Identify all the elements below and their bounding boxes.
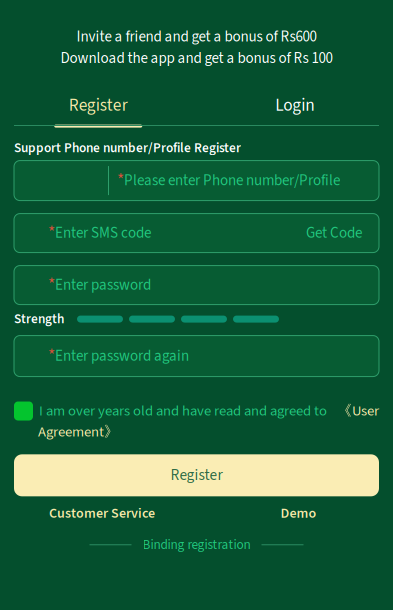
staticText: Please enter Phone number/Profile: [124, 170, 340, 191]
staticText: Customer Service: [49, 503, 155, 523]
staticText: I am over years old and have read and ag…: [39, 401, 327, 421]
button[interactable]: Demo: [204, 503, 393, 523]
staticText: *: [48, 344, 55, 368]
staticText: *: [117, 168, 124, 193]
button[interactable]: Binding registration: [142, 535, 250, 554]
button[interactable]: Get Code: [306, 222, 362, 244]
staticText: Enter password again: [55, 345, 189, 367]
button[interactable]: Customer Service: [0, 503, 204, 523]
button[interactable]: Register: [14, 454, 379, 496]
staticText: Invite a friend and get a bonus of Rs600: [76, 26, 316, 47]
staticText: Login: [275, 93, 314, 118]
button[interactable]: Login: [196, 93, 393, 128]
staticText: Register: [69, 93, 128, 118]
button[interactable]: Agreement》: [38, 421, 119, 442]
button[interactable]: 《User: [337, 401, 379, 421]
staticText: Demo: [280, 503, 316, 523]
staticText: Download the app and get a bonus of Rs 1…: [60, 47, 332, 69]
staticText: *: [48, 221, 55, 245]
button[interactable]: Register: [0, 93, 196, 128]
staticText: Agreement》: [38, 421, 119, 442]
button[interactable]: Accept user agreement: [14, 401, 33, 420]
staticText: 《User: [337, 401, 379, 421]
staticText: *: [48, 273, 55, 297]
staticText: Enter password: [55, 274, 151, 296]
staticText: Get Code: [306, 222, 362, 244]
staticText: Enter SMS code: [55, 222, 151, 244]
staticText: Strength: [14, 310, 64, 329]
staticText: Binding registration: [142, 535, 250, 554]
staticText: Register: [170, 464, 222, 486]
staticText: Support Phone number/Profile Register: [14, 139, 241, 158]
